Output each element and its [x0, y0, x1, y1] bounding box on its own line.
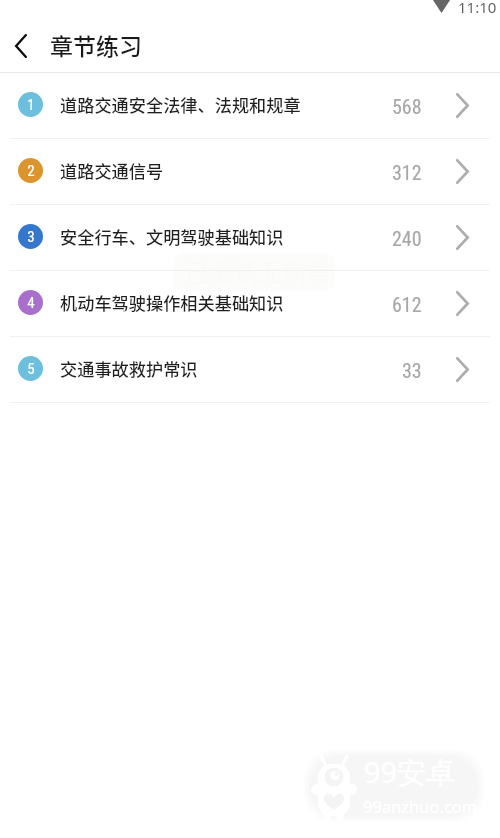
- staticText: 交通事故救护常识: [60, 356, 198, 381]
- staticText: 99anzhuo.com: [363, 795, 478, 817]
- staticText: 5: [27, 360, 35, 378]
- staticText: 99安卓: [364, 752, 456, 792]
- button[interactable]: 2: [0, 139, 500, 204]
- staticText: 3: [27, 228, 35, 246]
- staticText: 312: [392, 161, 422, 184]
- staticText: 33: [402, 359, 422, 382]
- staticText: 道路交通信号: [60, 158, 164, 183]
- staticText: 568: [392, 95, 422, 118]
- staticText: 章节练习: [50, 28, 142, 61]
- staticText: 道路交通安全法律、法规和规章: [60, 92, 301, 117]
- staticText: 11:10: [458, 0, 497, 17]
- button[interactable]: 4: [0, 271, 500, 336]
- staticText: 安全行车、文明驾驶基础知识: [60, 224, 284, 249]
- staticText: 612: [392, 293, 422, 316]
- button[interactable]: 1: [0, 73, 500, 138]
- button[interactable]: Back: [0, 24, 41, 68]
- button[interactable]: 3: [0, 205, 500, 270]
- staticText: 4: [27, 294, 35, 312]
- staticText: 机动车驾驶操作相关基础知识: [60, 290, 284, 315]
- staticText: 240: [392, 227, 422, 250]
- button[interactable]: 5: [0, 337, 500, 402]
- staticText: 2: [27, 162, 35, 180]
- staticText: 1: [27, 96, 35, 114]
